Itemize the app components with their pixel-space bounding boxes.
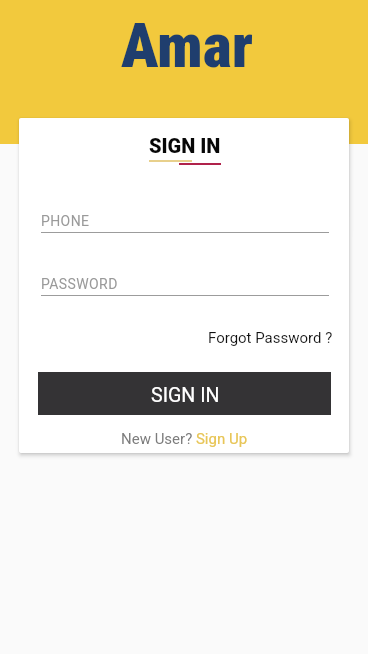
staticText: New User? Sign Up [121, 430, 248, 448]
staticText: SIGN IN [151, 384, 220, 407]
button[interactable]: SIGN IN [38, 372, 331, 415]
staticText: SIGN IN [149, 134, 221, 157]
staticText: Amar [121, 9, 254, 82]
button[interactable]: PASSWORD [41, 276, 329, 296]
button[interactable]: Forgot Password ? [208, 329, 333, 347]
staticText: PHONE [41, 213, 90, 229]
staticText: PASSWORD [41, 276, 118, 292]
button[interactable]: PHONE [41, 213, 329, 233]
button[interactable]: New User? Sign Up [121, 430, 248, 448]
staticText: Forgot Password ? [208, 329, 333, 347]
